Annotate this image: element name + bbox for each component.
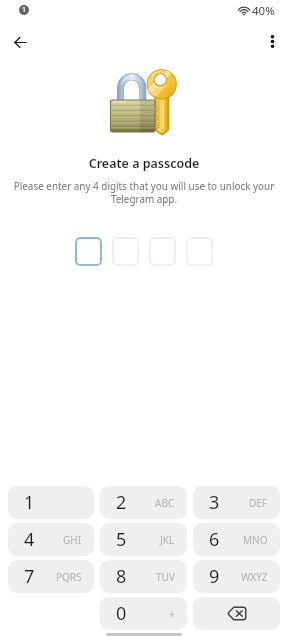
- staticText: DEF: [249, 496, 268, 510]
- staticText: Create a passcode: [0, 155, 288, 172]
- button[interactable]: 1: [8, 486, 94, 519]
- button[interactable]: 6: [193, 523, 280, 556]
- button[interactable]: Back: [5, 27, 35, 57]
- staticText: 3: [209, 490, 220, 515]
- staticText: 8: [116, 564, 127, 589]
- staticText: 1: [24, 490, 35, 515]
- staticText: PQRS: [56, 570, 82, 584]
- staticText: TUV: [156, 570, 175, 584]
- button[interactable]: [149, 237, 176, 266]
- button[interactable]: 3: [193, 486, 280, 519]
- staticText: 2: [116, 490, 127, 515]
- staticText: 9: [209, 564, 220, 589]
- button[interactable]: [75, 237, 102, 266]
- button[interactable]: [186, 237, 213, 266]
- staticText: 4: [24, 527, 35, 552]
- staticText: GHI: [63, 533, 82, 547]
- staticText: MNO: [243, 533, 268, 547]
- staticText: 1: [22, 5, 27, 15]
- staticText: 40%: [252, 3, 275, 19]
- staticText: 6: [209, 527, 220, 552]
- staticText: 0: [116, 601, 127, 626]
- staticText: Please enter any 4 digits that you will …: [0, 179, 288, 192]
- staticText: WXYZ: [241, 570, 268, 584]
- button[interactable]: 5: [100, 523, 187, 556]
- button[interactable]: 0: [100, 597, 187, 630]
- button[interactable]: 7: [8, 560, 94, 593]
- button[interactable]: 4: [8, 523, 94, 556]
- button[interactable]: Backspace: [193, 597, 280, 630]
- button[interactable]: 9: [193, 560, 280, 593]
- staticText: ABC: [155, 496, 175, 510]
- staticText: +: [169, 607, 175, 621]
- button[interactable]: 8: [100, 560, 187, 593]
- staticText: JKL: [160, 533, 175, 547]
- staticText: Telegram app.: [0, 192, 288, 205]
- button[interactable]: More options: [257, 26, 287, 56]
- staticText: 5: [116, 527, 127, 552]
- button[interactable]: [112, 237, 139, 266]
- button[interactable]: 2: [100, 486, 187, 519]
- staticText: 7: [24, 564, 35, 589]
